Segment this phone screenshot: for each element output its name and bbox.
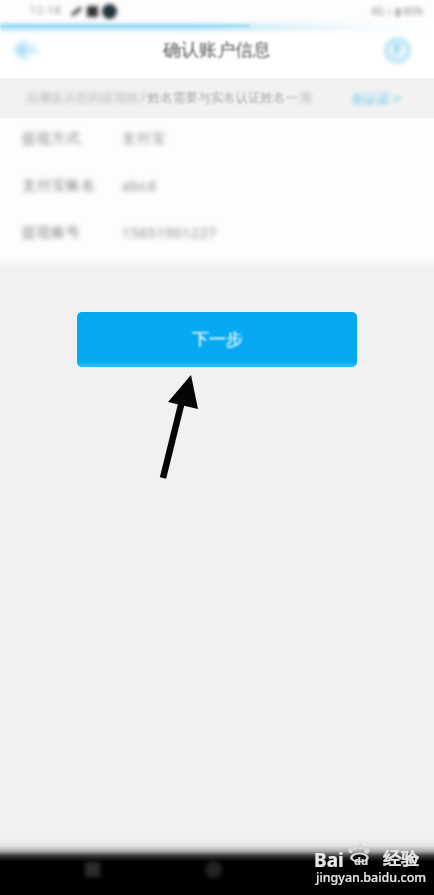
button[interactable]: Recents xyxy=(85,862,100,877)
staticText: 致 xyxy=(300,90,313,106)
staticText: 经验 xyxy=(383,848,419,869)
staticText: 温馨提示您的提现账户 xyxy=(26,90,151,106)
staticText: 4G ⌁ ▮ 85% xyxy=(371,4,424,18)
button[interactable]: 下一步 xyxy=(77,312,357,367)
staticText: 支付宝账名 xyxy=(22,177,95,195)
staticText: 下一步 xyxy=(192,329,243,350)
staticText: 提现账号 xyxy=(22,224,81,242)
staticText: 确认账户信息 xyxy=(163,39,271,62)
staticText: ? xyxy=(393,39,401,59)
button[interactable]: 支付宝账名 xyxy=(0,162,434,209)
button[interactable]: Home xyxy=(205,861,222,878)
staticText: 姓名需要与实名认证姓名一 xyxy=(148,90,298,106)
button[interactable]: 提现账号 xyxy=(0,209,434,256)
button[interactable]: Help xyxy=(380,33,414,67)
staticText: 15651901227 xyxy=(122,223,217,242)
staticText: Bai xyxy=(314,847,344,868)
staticText: jingyan.baidu.com xyxy=(316,869,427,886)
staticText: 提现方式 xyxy=(22,130,81,148)
staticText: 去认证 > xyxy=(351,89,401,107)
button[interactable]: 提现方式 xyxy=(0,115,434,162)
staticText: abcd xyxy=(122,176,157,195)
staticText: du xyxy=(354,853,369,868)
button[interactable]: Back xyxy=(4,28,48,72)
staticText: 支付宝 xyxy=(122,130,166,148)
staticText: 12:18 xyxy=(30,3,62,17)
